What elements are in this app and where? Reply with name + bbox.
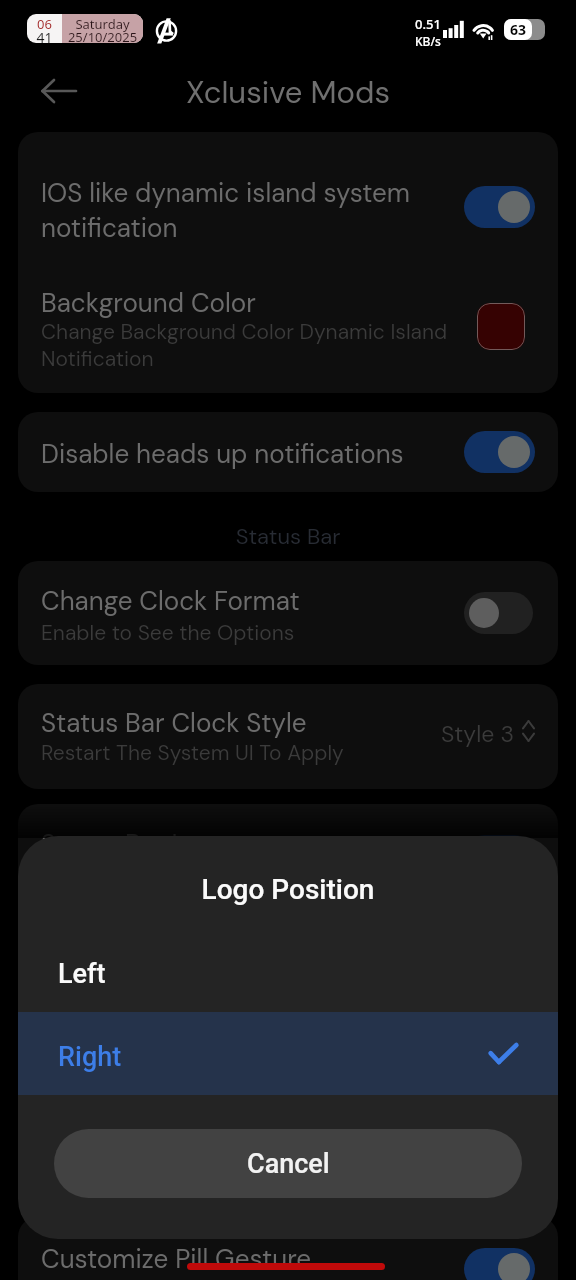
staticText: Status Bar Clock Style [41, 706, 307, 740]
staticText: Cancel [247, 1148, 330, 1180]
staticText: Customize Pill Gesture [41, 1242, 312, 1276]
staticText: KB/s [415, 33, 441, 49]
staticText: 25/10/2025 [62, 28, 143, 43]
button[interactable]: Status Bar Clock Style [18, 684, 558, 789]
button[interactable]: Cancel [54, 1129, 522, 1198]
staticText: 63 [510, 20, 527, 39]
button[interactable]: Toggle [464, 1248, 535, 1280]
button[interactable]: Change Clock Format [18, 561, 558, 665]
staticText: Enable The Status Bar Logo [41, 862, 305, 889]
button[interactable]: Back [30, 62, 88, 120]
staticText: Xclusive Mods [0, 72, 576, 112]
button[interactable]: Disable heads up notifications [18, 412, 558, 492]
button[interactable]: Customize Pill Gesture [18, 1217, 558, 1280]
button[interactable]: Right [18, 1012, 558, 1095]
staticText: Status Bar [0, 522, 576, 551]
staticText: Change Background Color Dynamic Island N… [41, 318, 471, 373]
staticText: Logo Position [18, 873, 558, 906]
staticText: Background Color [41, 286, 256, 320]
staticText: Style 3 [441, 719, 515, 749]
staticText: Saturday [62, 15, 143, 33]
button[interactable]: Toggle [464, 431, 535, 473]
staticText: Enable to See the Options [41, 619, 295, 646]
button[interactable]: Left [18, 929, 558, 1012]
button[interactable]: Pick background colour [477, 303, 525, 350]
button[interactable]: Toggle [464, 835, 535, 877]
staticText: 41 [27, 28, 62, 43]
staticText: Change Clock Format [41, 584, 300, 618]
button[interactable]: Toggle [464, 592, 533, 634]
staticText: IOS like dynamic island system notificat… [41, 176, 433, 245]
staticText: 0.51 [415, 15, 441, 33]
staticText: Disable heads up notifications [41, 437, 404, 471]
button[interactable]: IOS like dynamic island system notificat… [18, 132, 558, 393]
button[interactable]: Status Bar Logo [18, 804, 558, 908]
button[interactable]: Toggle [464, 186, 535, 228]
staticText: Status Bar Logo [41, 827, 229, 861]
button[interactable]: Change clock style [522, 720, 535, 742]
staticText: 06 [27, 15, 62, 33]
staticText: Right [58, 1041, 122, 1073]
staticText: Restart The System UI To Apply [41, 739, 344, 766]
staticText: Left [58, 958, 106, 990]
